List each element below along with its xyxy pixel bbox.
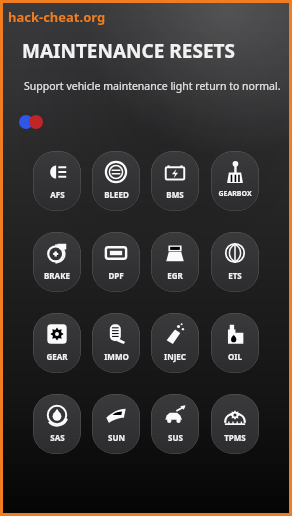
staticText: INJEC <box>164 351 186 362</box>
staticText: Support vehicle maintenance light return… <box>24 79 281 93</box>
staticText: BMS <box>166 189 184 200</box>
button[interactable]: AFS <box>33 151 81 211</box>
staticText: IMMO <box>104 351 129 362</box>
button[interactable]: BMS <box>151 151 199 211</box>
staticText: AFS <box>50 189 65 200</box>
staticText: SUS <box>168 432 183 443</box>
button[interactable]: TPMS <box>211 394 259 454</box>
staticText: hack-cheat.org <box>8 8 106 26</box>
button[interactable]: SUN <box>92 394 140 454</box>
staticText: SAS <box>50 432 65 443</box>
button[interactable]: INJEC <box>151 313 199 373</box>
staticText: ETS <box>228 270 242 281</box>
staticText: EGR <box>167 270 183 281</box>
staticText: OIL <box>228 351 242 362</box>
button[interactable]: BLEED <box>92 151 140 211</box>
button[interactable]: BRAKE <box>33 232 81 292</box>
staticText: SUN <box>108 432 125 443</box>
button[interactable]: OIL <box>211 313 259 373</box>
staticText: TPMS <box>224 432 246 443</box>
button[interactable]: GEAR <box>33 313 81 373</box>
button[interactable]: SAS <box>33 394 81 454</box>
staticText: MAINTENANCE RESETS <box>22 38 235 64</box>
button[interactable]: SUS <box>151 394 199 454</box>
staticText: BLEED <box>104 189 129 200</box>
staticText: DPF <box>108 270 124 281</box>
button[interactable]: DPF <box>92 232 140 292</box>
button[interactable]: EGR <box>151 232 199 292</box>
staticText: GEAR <box>46 351 68 362</box>
staticText: BRAKE <box>44 270 70 281</box>
button[interactable]: ETS <box>211 232 259 292</box>
button[interactable]: IMMO <box>92 313 140 373</box>
staticText: GEARBOX <box>218 189 252 199</box>
button[interactable]: GEARBOX <box>211 151 259 211</box>
